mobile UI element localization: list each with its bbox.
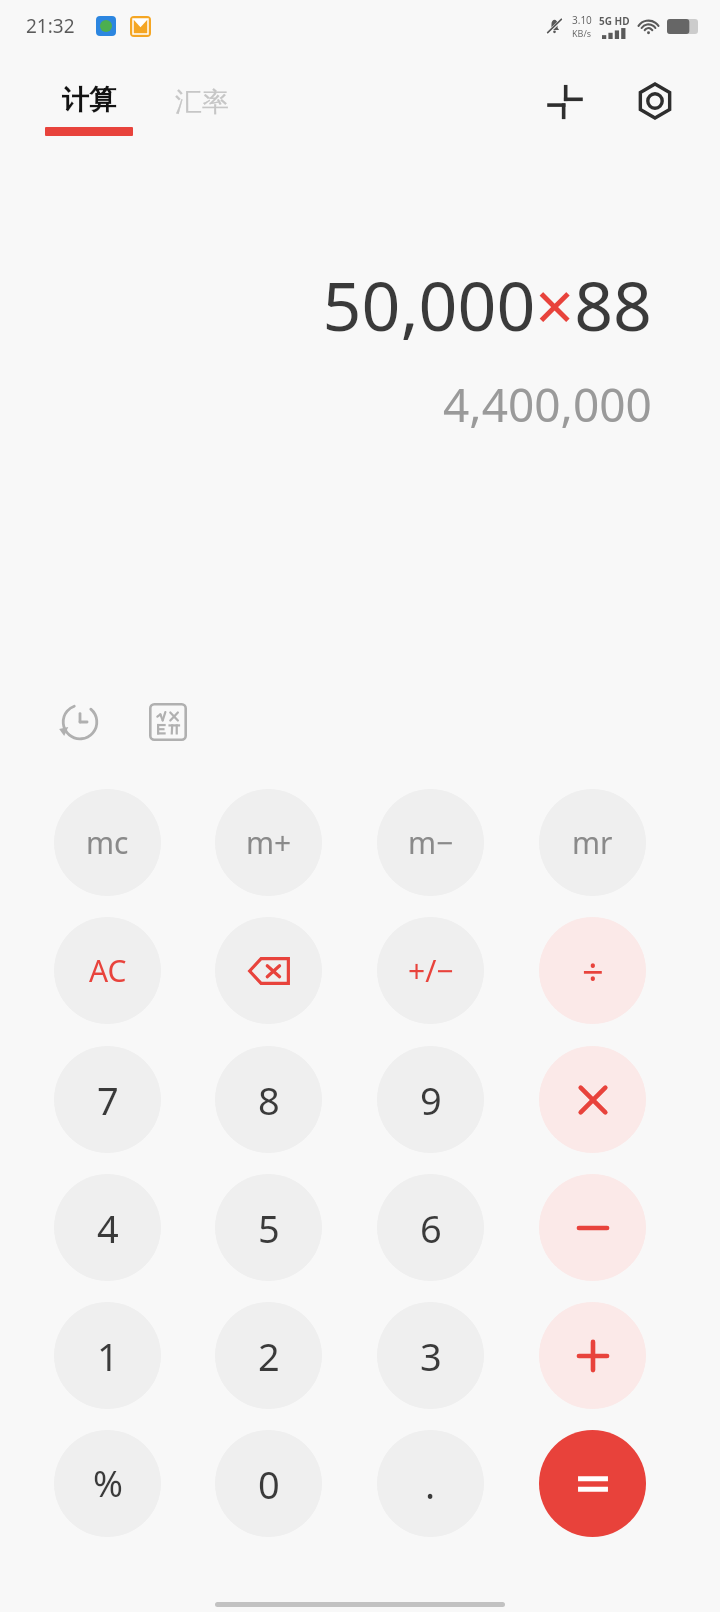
button[interactable]: 7 (54, 1046, 161, 1153)
button[interactable]: Scientific (140, 694, 196, 750)
button[interactable] (539, 1174, 646, 1281)
button[interactable]: 1 (54, 1302, 161, 1409)
staticText: 3 (420, 1330, 442, 1382)
staticText: mc (86, 822, 129, 863)
button[interactable]: 0 (215, 1430, 322, 1537)
staticText: % (93, 1459, 123, 1508)
button[interactable]: mc (54, 789, 161, 896)
button[interactable]: +/− (377, 917, 484, 1024)
staticText: 9 (420, 1074, 442, 1126)
staticText: 汇率 (175, 85, 229, 119)
button[interactable]: Settings (628, 74, 682, 128)
staticText: AC (89, 950, 127, 991)
staticText: 5G HD (599, 14, 630, 28)
button[interactable]: Collapse (538, 74, 592, 128)
button[interactable]: 9 (377, 1046, 484, 1153)
button[interactable]: AC (54, 917, 161, 1024)
button[interactable]: % (54, 1430, 161, 1537)
staticText: 5 (258, 1202, 280, 1254)
staticText: 7 (97, 1074, 119, 1126)
staticText: 6 (420, 1202, 442, 1254)
staticText: 50,000×88 (322, 258, 652, 351)
button[interactable]: ÷ (539, 917, 646, 1024)
button[interactable]: Equals (539, 1430, 646, 1537)
button[interactable]: 3 (377, 1302, 484, 1409)
staticText: 3.10 (572, 13, 592, 27)
button[interactable]: m− (377, 789, 484, 896)
button[interactable]: 汇率 (175, 85, 229, 119)
staticText: 8 (258, 1074, 280, 1126)
staticText: KB/s (572, 27, 592, 39)
staticText: +/− (408, 950, 454, 991)
button[interactable]: 6 (377, 1174, 484, 1281)
staticText: 2 (258, 1330, 280, 1382)
staticText: 计算 (62, 83, 116, 117)
button[interactable] (539, 1302, 646, 1409)
staticText: 0 (258, 1458, 280, 1510)
staticText: m+ (246, 822, 292, 863)
staticText: . (425, 1458, 436, 1510)
button[interactable]: mr (539, 789, 646, 896)
button[interactable] (539, 1046, 646, 1153)
button[interactable]: m+ (215, 789, 322, 896)
button[interactable]: . (377, 1430, 484, 1537)
staticText: 4,400,000 (443, 373, 652, 436)
button[interactable]: 计算 (45, 83, 133, 136)
staticText: 1 (97, 1330, 119, 1382)
button[interactable]: 4 (54, 1174, 161, 1281)
button[interactable]: 2 (215, 1302, 322, 1409)
button[interactable]: Backspace (215, 917, 322, 1024)
staticText: 21:32 (26, 13, 75, 39)
staticText: m− (408, 822, 454, 863)
button[interactable]: 8 (215, 1046, 322, 1153)
staticText: 4 (97, 1202, 119, 1254)
staticText: ÷ (582, 945, 604, 997)
staticText: mr (572, 822, 613, 863)
button[interactable]: 5 (215, 1174, 322, 1281)
button[interactable]: History (52, 694, 108, 750)
